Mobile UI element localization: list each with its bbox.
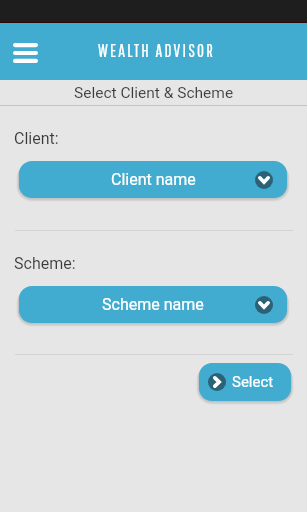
button[interactable]: Client name [19, 161, 287, 198]
staticText: WEALTH ADVISOR [98, 41, 216, 61]
staticText: Client: [14, 129, 59, 148]
staticText: Scheme name [102, 295, 204, 314]
staticText: Select [232, 373, 274, 391]
staticText: Client name [111, 170, 196, 189]
staticText: Select Client & Scheme [74, 84, 234, 102]
staticText: Scheme: [14, 254, 76, 273]
button[interactable]: Scheme name [19, 286, 287, 323]
button[interactable]: Select [199, 363, 291, 401]
button[interactable]: Open navigation menu [10, 38, 40, 68]
